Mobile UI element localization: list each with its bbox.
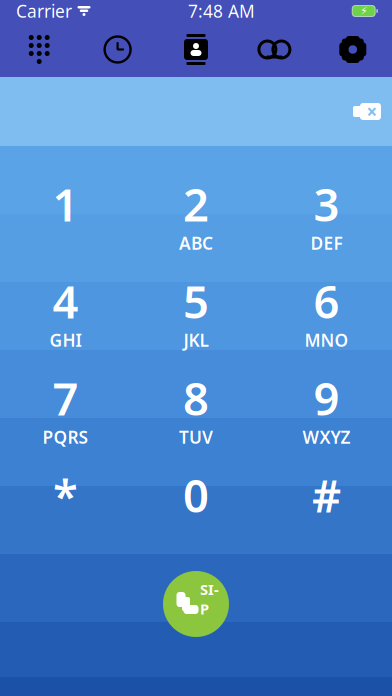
button[interactable]: 8 bbox=[131, 376, 261, 436]
staticText: 2 bbox=[183, 174, 209, 234]
button[interactable]: * bbox=[0, 473, 131, 533]
staticText: 6 bbox=[314, 271, 340, 331]
staticText: DEF bbox=[311, 232, 343, 255]
button[interactable]: Contacts bbox=[157, 22, 235, 77]
button[interactable]: 4 bbox=[0, 279, 131, 339]
button[interactable]: 6 bbox=[261, 279, 392, 339]
button[interactable]: 3 bbox=[261, 182, 392, 242]
staticText: # bbox=[312, 465, 341, 525]
staticText: ABC bbox=[179, 232, 213, 255]
staticText: * bbox=[53, 465, 78, 525]
staticText: 5 bbox=[183, 271, 209, 331]
button[interactable]: Keypad bbox=[0, 22, 78, 77]
staticText: × bbox=[366, 99, 377, 124]
staticText: 9 bbox=[314, 368, 340, 428]
staticText: ⚡︎ bbox=[360, 5, 367, 17]
staticText: Carrier bbox=[16, 0, 72, 22]
staticText: MNO bbox=[305, 329, 349, 352]
staticText: TUV bbox=[179, 426, 213, 449]
button[interactable]: Delete bbox=[352, 92, 392, 130]
staticText: 7:48 AM bbox=[188, 0, 255, 22]
button[interactable]: 5 bbox=[131, 279, 261, 339]
staticText: SIP bbox=[200, 579, 219, 618]
button[interactable]: Voicemail bbox=[235, 22, 314, 77]
staticText: JKL bbox=[183, 329, 208, 352]
button[interactable]: 0 bbox=[131, 473, 261, 533]
button[interactable]: 1 bbox=[0, 182, 131, 242]
button[interactable]: 7 bbox=[0, 376, 131, 436]
staticText: 0 bbox=[183, 465, 209, 525]
button[interactable]: 2 bbox=[131, 182, 261, 242]
staticText: 3 bbox=[314, 174, 340, 234]
staticText: 7 bbox=[52, 368, 78, 428]
button[interactable]: Call bbox=[0, 571, 392, 637]
staticText: 4 bbox=[52, 271, 78, 331]
staticText: 1 bbox=[52, 174, 78, 234]
staticText: 8 bbox=[183, 368, 209, 428]
button[interactable]: 9 bbox=[261, 376, 392, 436]
staticText: GHI bbox=[49, 329, 81, 352]
staticText: WXYZ bbox=[303, 426, 351, 449]
button[interactable]: Settings bbox=[314, 22, 392, 77]
button[interactable]: Recents bbox=[78, 22, 157, 77]
staticText: PQRS bbox=[42, 426, 88, 449]
button[interactable]: # bbox=[261, 473, 392, 533]
